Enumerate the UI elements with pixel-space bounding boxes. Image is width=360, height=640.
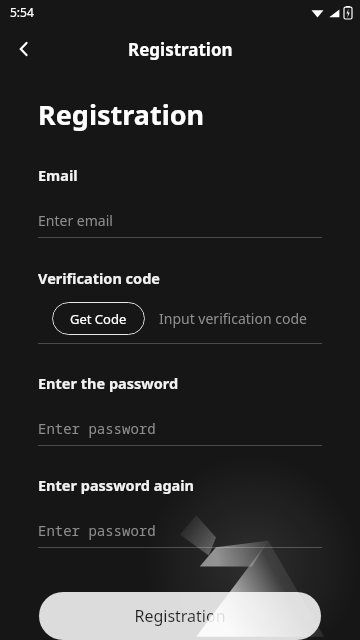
button[interactable]: Registration	[39, 592, 321, 640]
staticText: Verification code	[38, 268, 160, 288]
staticText: Registration	[134, 605, 226, 627]
staticText: Enter the password	[38, 373, 179, 393]
button[interactable]: Input verification code	[159, 309, 322, 328]
button[interactable]: Enter password	[38, 521, 322, 540]
button[interactable]: Enter email	[38, 211, 322, 230]
button[interactable]: Back	[0, 25, 48, 73]
staticText: Email	[38, 165, 78, 185]
staticText: Enter email	[38, 211, 113, 230]
staticText: Enter password again	[38, 475, 195, 495]
staticText: 5:54	[10, 4, 34, 20]
staticText: Registration	[128, 38, 233, 61]
button[interactable]: Get Code	[52, 302, 145, 335]
button[interactable]: Enter password	[38, 419, 322, 438]
staticText: Get Code	[70, 310, 127, 328]
staticText: Input verification code	[159, 309, 307, 328]
staticText: Enter password	[38, 419, 156, 438]
staticText: Enter password	[38, 521, 156, 540]
staticText: Registration	[38, 96, 205, 133]
